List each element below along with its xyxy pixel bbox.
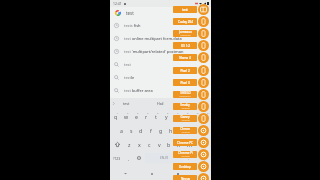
button[interactable]: d: [136, 123, 146, 137]
button[interactable]: a: [116, 123, 126, 137]
staticText: y: [165, 113, 168, 120]
button[interactable]: Cast to Pixel 2: [198, 65, 209, 76]
button[interactable]: Jumeaux: [173, 30, 197, 37]
button[interactable]: t: [151, 109, 161, 123]
button[interactable]: Pixel 2: [173, 67, 197, 74]
button[interactable]: test: [110, 7, 211, 19]
button[interactable]: q: [110, 109, 121, 123]
button[interactable]: Change language: [134, 151, 144, 165]
button[interactable]: [177, 98, 211, 109]
staticText: 1: [117, 111, 119, 114]
button[interactable]: Cast to US 1:2: [198, 40, 209, 51]
button[interactable]: EN-VI: [145, 153, 183, 163]
button[interactable]: Cast to Nexus: [198, 173, 209, 180]
button[interactable]: j: [176, 123, 186, 137]
staticText: n: [177, 141, 181, 148]
staticText: Jumeaux: [179, 30, 192, 34]
button[interactable]: Cast to Chrom: [198, 125, 209, 136]
staticText: o: [194, 113, 198, 120]
button[interactable]: Cast to Pixel 3: [198, 77, 209, 88]
button[interactable]: Search: [194, 151, 211, 165]
staticText: SHIELD: [180, 91, 191, 95]
button[interactable]: b: [164, 137, 174, 151]
button[interactable]: Cast to Smoky: [198, 101, 209, 112]
button[interactable]: Period: [184, 151, 194, 165]
staticText: e: [135, 113, 138, 120]
button[interactable]: Cast to Ganey: [198, 113, 209, 124]
button[interactable]: tests fish: [110, 19, 211, 32]
button[interactable]: Smoky: [173, 103, 197, 110]
staticText: w: [124, 113, 129, 120]
staticText: p: [204, 113, 208, 120]
button[interactable]: Recents: [173, 169, 182, 178]
button[interactable]: Home: [147, 169, 156, 178]
button[interactable]: Pixel 3: [173, 79, 197, 86]
button[interactable]: Cast to Nomo 4: [198, 52, 209, 63]
staticText: testle: [124, 75, 135, 80]
button[interactable]: Ganey: [173, 115, 197, 122]
staticText: 12:41: [113, 1, 122, 6]
button[interactable]: test 'multipart/related' postman: [110, 45, 211, 58]
button[interactable]: l: [196, 123, 206, 137]
button[interactable]: z: [124, 137, 134, 151]
button[interactable]: test: [110, 58, 211, 71]
staticText: i: [185, 113, 187, 120]
button[interactable]: Chrome Pi: [173, 151, 197, 158]
button[interactable]: h: [166, 123, 176, 137]
button[interactable]: Cast to Jumeaux: [198, 28, 209, 39]
button[interactable]: Chrome PC: [173, 139, 197, 146]
button[interactable]: Shift: [110, 137, 124, 151]
button[interactable]: Nexus: [173, 175, 197, 180]
button[interactable]: u: [171, 109, 181, 123]
button[interactable]: f: [146, 123, 156, 137]
button[interactable]: Cast to Desktop: [198, 161, 209, 172]
button[interactable]: Hide keyboard: [121, 169, 130, 178]
button[interactable]: Cast to Chrome Pi: [198, 149, 209, 160]
button[interactable]: y: [161, 109, 171, 123]
button[interactable]: More suggestions: [110, 98, 117, 109]
button[interactable]: c: [144, 137, 154, 151]
staticText: g: [159, 127, 163, 134]
button[interactable]: Cast to SHIELD: [198, 89, 209, 100]
button[interactable]: Cast to Cuday 254: [198, 16, 209, 27]
button[interactable]: s: [126, 123, 136, 137]
button[interactable]: Cast to Chrome PC: [198, 137, 209, 148]
staticText: m: [187, 141, 192, 148]
button[interactable]: test online multipart form-data: [110, 32, 211, 45]
button[interactable]: n: [174, 137, 184, 151]
button[interactable]: r: [141, 109, 151, 123]
button[interactable]: Cuday 254: [173, 18, 197, 25]
button[interactable]: Backspace: [194, 137, 211, 151]
button[interactable]: e: [131, 109, 141, 123]
button[interactable]: w: [121, 109, 131, 123]
button[interactable]: Hail: [143, 98, 177, 109]
button[interactable]: Cast to test: [198, 4, 209, 15]
button[interactable]: o: [191, 109, 201, 123]
button[interactable]: v: [154, 137, 164, 151]
staticText: test: [124, 62, 131, 67]
staticText: v: [158, 141, 161, 148]
staticText: r: [145, 113, 148, 120]
button[interactable]: Desktop: [173, 163, 197, 170]
button[interactable]: x: [134, 137, 144, 151]
button[interactable]: g: [156, 123, 166, 137]
button[interactable]: test: [110, 98, 143, 109]
button[interactable]: k: [186, 123, 196, 137]
button[interactable]: Chrom: [173, 127, 197, 134]
button[interactable]: Comma: [124, 151, 134, 165]
staticText: 2: [127, 111, 129, 114]
button[interactable]: i: [181, 109, 191, 123]
button[interactable]: ?123: [110, 151, 124, 165]
staticText: test: [123, 101, 130, 106]
button[interactable]: US 1:2: [173, 42, 197, 49]
button[interactable]: testle: [110, 71, 211, 84]
button[interactable]: test buffer area: [110, 84, 211, 97]
button[interactable]: m: [184, 137, 194, 151]
button[interactable]: SHIELD: [173, 91, 197, 98]
button[interactable]: Nomo 4: [173, 54, 197, 61]
button[interactable]: test: [173, 6, 197, 13]
button[interactable]: p: [201, 109, 211, 123]
staticText: Smoky: [180, 103, 190, 107]
staticText: Cuday 254: [178, 20, 193, 24]
